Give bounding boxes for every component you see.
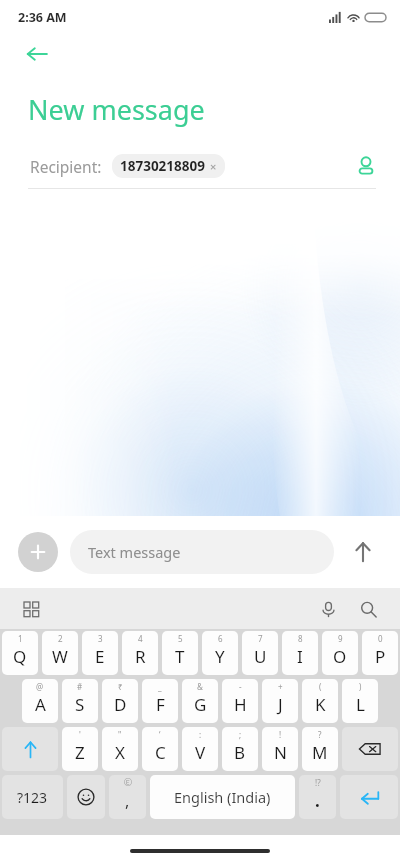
staticText: U bbox=[254, 645, 267, 668]
staticText: : bbox=[199, 729, 202, 740]
staticText: 2:36 AM bbox=[18, 9, 67, 26]
staticText: × bbox=[210, 159, 217, 174]
button[interactable]: Voice input bbox=[312, 593, 344, 625]
staticText: 9 bbox=[338, 633, 343, 644]
staticText: X bbox=[115, 741, 125, 764]
button[interactable]: ?123 bbox=[2, 775, 63, 819]
button[interactable]: " bbox=[102, 727, 138, 771]
button[interactable]: _ bbox=[142, 679, 178, 723]
button[interactable]: 2 bbox=[42, 631, 78, 675]
staticText: !? bbox=[315, 777, 321, 788]
staticText: Y bbox=[215, 645, 225, 668]
button[interactable]: ; bbox=[222, 727, 258, 771]
staticText: 18730218809 bbox=[120, 157, 205, 175]
staticText: N bbox=[274, 741, 287, 764]
staticText: Text message bbox=[88, 542, 181, 562]
button[interactable]: - bbox=[222, 679, 258, 723]
button[interactable]: 7 bbox=[242, 631, 278, 675]
button[interactable]: ' bbox=[62, 727, 98, 771]
staticText: S bbox=[75, 693, 85, 716]
button[interactable]: # bbox=[62, 679, 98, 723]
button[interactable] bbox=[2, 727, 58, 771]
staticText: ?123 bbox=[17, 788, 48, 807]
staticText: G bbox=[194, 693, 207, 716]
staticText: O bbox=[333, 645, 347, 668]
button[interactable]: Keyboard menu bbox=[16, 594, 46, 624]
button[interactable]: ! bbox=[262, 727, 298, 771]
staticText: 2 bbox=[58, 633, 63, 644]
staticText: @ bbox=[36, 681, 44, 692]
button[interactable]: ‘ bbox=[142, 727, 178, 771]
staticText: + bbox=[278, 681, 283, 692]
staticText: ) bbox=[359, 681, 362, 692]
staticText: Z bbox=[75, 741, 85, 764]
staticText: J bbox=[278, 693, 283, 716]
staticText: - bbox=[239, 681, 242, 692]
staticText: P bbox=[375, 645, 386, 668]
staticText: Recipient: bbox=[30, 156, 102, 177]
staticText: " bbox=[118, 729, 122, 740]
staticText: E bbox=[95, 645, 105, 668]
button[interactable]: Text message bbox=[70, 530, 334, 574]
button[interactable]: 5 bbox=[162, 631, 198, 675]
staticText: Ⓔ bbox=[124, 777, 132, 787]
staticText: M bbox=[312, 741, 328, 764]
button[interactable]: Back bbox=[20, 37, 54, 71]
button[interactable]: Add contact bbox=[350, 150, 382, 182]
staticText: A bbox=[35, 693, 46, 716]
staticText: C bbox=[155, 741, 166, 764]
button[interactable]: @ bbox=[22, 679, 58, 723]
staticText: L bbox=[356, 693, 365, 716]
button[interactable]: 3 bbox=[82, 631, 118, 675]
staticText: , bbox=[125, 790, 130, 812]
staticText: English (India) bbox=[174, 787, 271, 807]
button[interactable]: Send bbox=[344, 533, 382, 571]
button[interactable]: ₹ bbox=[102, 679, 138, 723]
staticText: 8 bbox=[298, 633, 303, 644]
button[interactable]: English (India) bbox=[150, 775, 295, 819]
staticText: ! bbox=[279, 729, 282, 740]
staticText: ₹ bbox=[118, 681, 123, 692]
button[interactable]: 18730218809 bbox=[112, 154, 225, 178]
button[interactable] bbox=[340, 775, 398, 819]
staticText: Q bbox=[13, 645, 27, 668]
button[interactable]: !? bbox=[299, 775, 336, 819]
staticText: 4 bbox=[138, 633, 143, 644]
button[interactable]: + bbox=[262, 679, 298, 723]
staticText: F bbox=[156, 693, 165, 716]
button[interactable]: 4 bbox=[122, 631, 158, 675]
button[interactable]: ? bbox=[302, 727, 338, 771]
staticText: I bbox=[297, 645, 303, 668]
staticText: ‘ bbox=[159, 729, 161, 740]
staticText: D bbox=[114, 693, 127, 716]
button[interactable]: Attach bbox=[18, 532, 58, 572]
staticText: _ bbox=[158, 681, 162, 692]
button[interactable]: 6 bbox=[202, 631, 238, 675]
button[interactable] bbox=[342, 727, 398, 771]
staticText: R bbox=[135, 645, 146, 668]
staticText: & bbox=[197, 681, 203, 692]
button[interactable]: 9 bbox=[322, 631, 358, 675]
button[interactable]: & bbox=[182, 679, 218, 723]
button[interactable] bbox=[67, 775, 105, 819]
button[interactable]: 0 bbox=[362, 631, 398, 675]
staticText: ' bbox=[79, 729, 81, 740]
button[interactable]: ( bbox=[302, 679, 338, 723]
staticText: V bbox=[195, 741, 206, 764]
button[interactable]: 8 bbox=[282, 631, 318, 675]
staticText: B bbox=[234, 741, 246, 764]
staticText: H bbox=[234, 693, 247, 716]
staticText: 6 bbox=[218, 633, 223, 644]
button[interactable]: : bbox=[182, 727, 218, 771]
staticText: 0 bbox=[378, 633, 383, 644]
staticText: T bbox=[175, 645, 185, 668]
button[interactable]: Search bbox=[352, 593, 384, 625]
staticText: 7 bbox=[258, 633, 263, 644]
staticText: # bbox=[77, 681, 83, 692]
button[interactable]: 1 bbox=[2, 631, 38, 675]
button[interactable]: Ⓔ bbox=[109, 775, 146, 819]
staticText: 3 bbox=[98, 633, 103, 644]
button[interactable]: ) bbox=[342, 679, 378, 723]
staticText: ( bbox=[319, 681, 322, 692]
staticText: ; bbox=[239, 729, 242, 740]
